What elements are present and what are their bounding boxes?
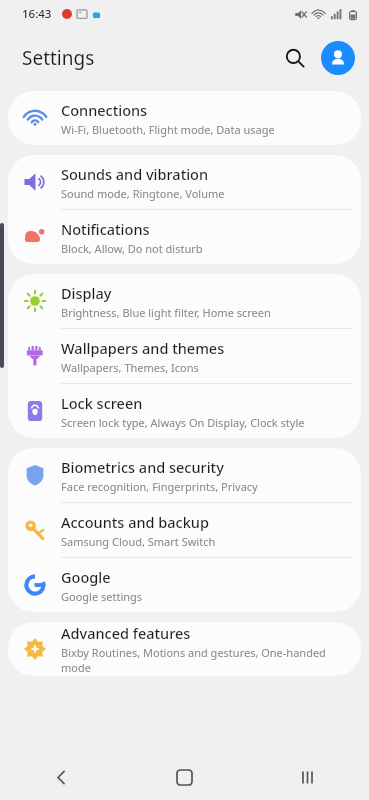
staticText: Screen lock type, Always On Display, Clo… <box>61 415 305 430</box>
button[interactable]: Notifications <box>8 210 361 264</box>
button[interactable]: Search <box>275 38 315 78</box>
button[interactable]: Sounds and vibration <box>8 155 361 209</box>
staticText: Brightness, Blue light filter, Home scre… <box>61 305 271 320</box>
button[interactable]: Recents <box>246 754 369 800</box>
staticText: 16:43 <box>22 6 52 22</box>
button[interactable]: Back <box>0 754 123 800</box>
staticText: Google settings <box>61 589 143 604</box>
staticText: Accounts and backup <box>61 512 209 532</box>
button[interactable]: Advanced features <box>8 622 361 676</box>
staticText: Sound mode, Ringtone, Volume <box>61 186 225 201</box>
staticText: Display <box>61 283 112 303</box>
staticText: Notifications <box>61 219 150 239</box>
button[interactable]: Google <box>8 558 361 612</box>
staticText: Biometrics and security <box>61 457 224 477</box>
staticText: Sounds and vibration <box>61 164 209 184</box>
button[interactable]: Connections <box>8 91 361 145</box>
staticText: Wallpapers, Themes, Icons <box>61 360 199 375</box>
staticText: Block, Allow, Do not disturb <box>61 241 203 256</box>
staticText: Settings <box>22 45 95 71</box>
staticText: Google <box>61 567 111 587</box>
button[interactable]: Account <box>321 41 355 75</box>
staticText: Connections <box>61 100 148 120</box>
staticText: Wi-Fi, Bluetooth, Flight mode, Data usag… <box>61 122 275 137</box>
staticText: Wallpapers and themes <box>61 338 225 358</box>
button[interactable]: Wallpapers and themes <box>8 329 361 383</box>
staticText: Samsung Cloud, Smart Switch <box>61 534 216 549</box>
staticText: Face recognition, Fingerprints, Privacy <box>61 479 258 494</box>
button[interactable]: Lock screen <box>8 384 361 438</box>
staticText: Bixby Routines, Motions and gestures, On… <box>61 645 351 675</box>
button[interactable]: Biometrics and security <box>8 448 361 502</box>
button[interactable]: Home <box>123 754 246 800</box>
staticText: Advanced features <box>61 623 191 643</box>
staticText: Lock screen <box>61 393 143 413</box>
button[interactable]: Accounts and backup <box>8 503 361 557</box>
button[interactable]: Display <box>8 274 361 328</box>
